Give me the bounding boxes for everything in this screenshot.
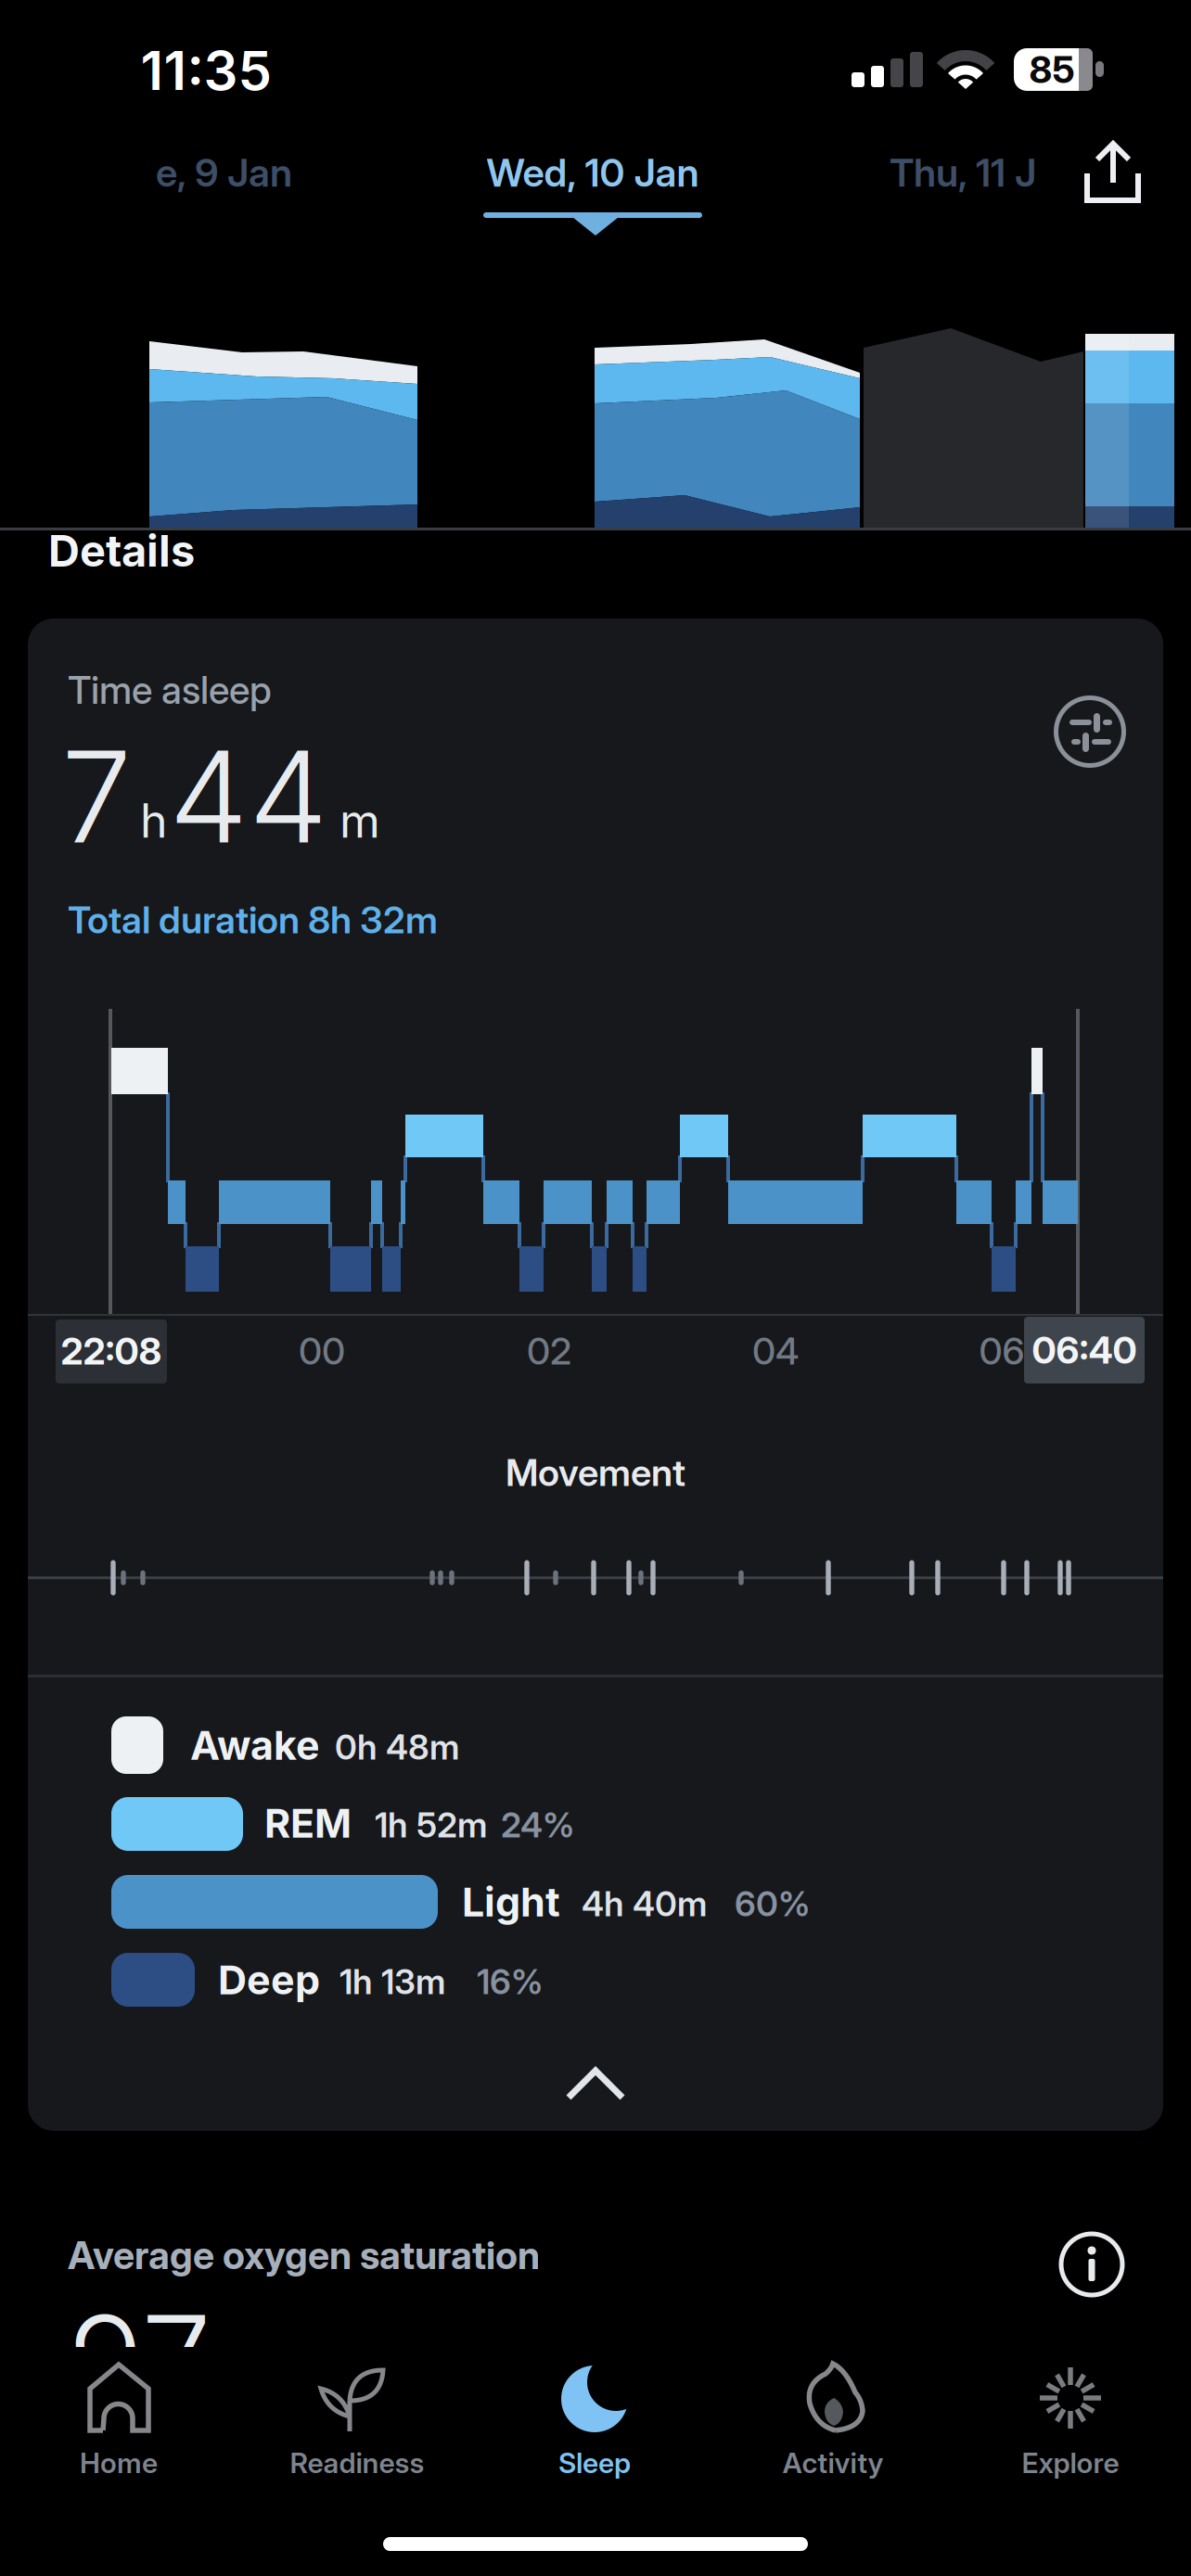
staticText: Total duration 8h 32m (68, 897, 438, 942)
staticText: Thu, 11 J (890, 149, 1036, 196)
staticText: 4h 40m (582, 1883, 707, 1924)
staticText: 44 (169, 720, 328, 873)
staticText: Deep (218, 1956, 320, 2004)
button[interactable]: Share (0, 0, 1191, 2576)
staticText: e, 9 Jan (156, 149, 292, 196)
staticText: 00 (299, 1329, 345, 1373)
staticText: Time asleep (68, 667, 272, 713)
button[interactable]: Collapse details (0, 0, 1191, 2576)
button[interactable]: About oxygen saturation (0, 0, 1191, 2576)
staticText: Sleep (558, 2446, 631, 2480)
button[interactable]: Activity (0, 0, 1191, 2576)
staticText: Movement (506, 1450, 685, 1495)
staticText: Home (80, 2446, 158, 2480)
staticText: Activity (782, 2446, 884, 2480)
staticText: 60% (735, 1883, 810, 1924)
staticText: 16% (477, 1961, 543, 2002)
staticText: 1h 52m (375, 1804, 487, 1846)
staticText: Readiness (290, 2446, 424, 2480)
staticText: Awake (190, 1721, 320, 1769)
staticText: m (339, 793, 380, 849)
staticText: 0h 48m (335, 1726, 459, 1768)
staticText: REM (264, 1799, 352, 1847)
staticText: 04 (752, 1329, 799, 1373)
staticText: Wed, 10 Jan (487, 149, 699, 196)
staticText: 1h 13m (339, 1961, 445, 2002)
staticText: Explore (1022, 2446, 1119, 2480)
staticText: Light (462, 1878, 560, 1926)
staticText: Details (48, 524, 195, 577)
staticText: h (140, 793, 168, 849)
staticText: 06 (979, 1329, 1025, 1373)
button[interactable]: Sleep (0, 0, 1191, 2576)
staticText: Average oxygen saturation (68, 2232, 540, 2278)
staticText: 7 (61, 720, 132, 873)
button[interactable]: Explore (0, 0, 1191, 2576)
staticText: 22:08 (61, 1329, 162, 1373)
button[interactable]: e, 9 Jan (0, 0, 1191, 2576)
button[interactable]: Thu, 11 J (0, 0, 1191, 2576)
button[interactable]: Wed, 10 Jan (0, 0, 1191, 2576)
staticText: 11:35 (141, 38, 271, 103)
button[interactable]: Home (0, 0, 1191, 2576)
button[interactable]: Adjust sleep time (0, 0, 1191, 2576)
staticText: 02 (527, 1329, 571, 1373)
staticText: 85 (1029, 47, 1075, 92)
staticText: 24% (501, 1804, 574, 1846)
staticText: 06:40 (1032, 1328, 1137, 1373)
button[interactable]: Readiness (0, 0, 1191, 2576)
staticText: 97 (68, 2285, 211, 2437)
